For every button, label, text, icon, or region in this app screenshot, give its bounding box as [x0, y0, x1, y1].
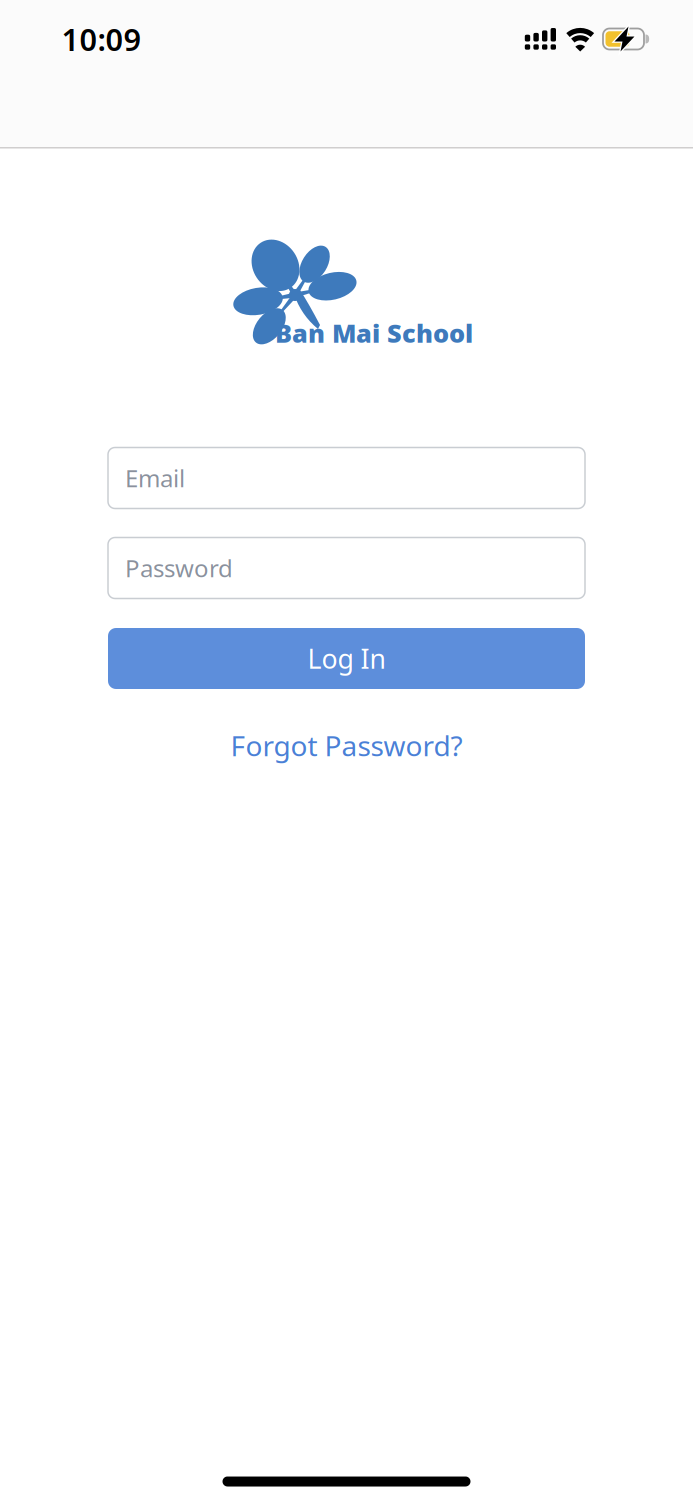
staticText: Ban Mai School	[275, 316, 473, 350]
staticText: 10:09	[61, 19, 141, 59]
staticText: Forgot Password?	[230, 727, 462, 764]
staticText: Password	[125, 552, 233, 584]
staticText: Email	[125, 462, 185, 494]
button[interactable]: Password	[108, 537, 585, 598]
button[interactable]: Forgot Password?	[230, 727, 462, 764]
button[interactable]: Email	[108, 447, 585, 508]
staticText: Log In	[307, 641, 385, 676]
button[interactable]: Log In	[108, 628, 585, 689]
